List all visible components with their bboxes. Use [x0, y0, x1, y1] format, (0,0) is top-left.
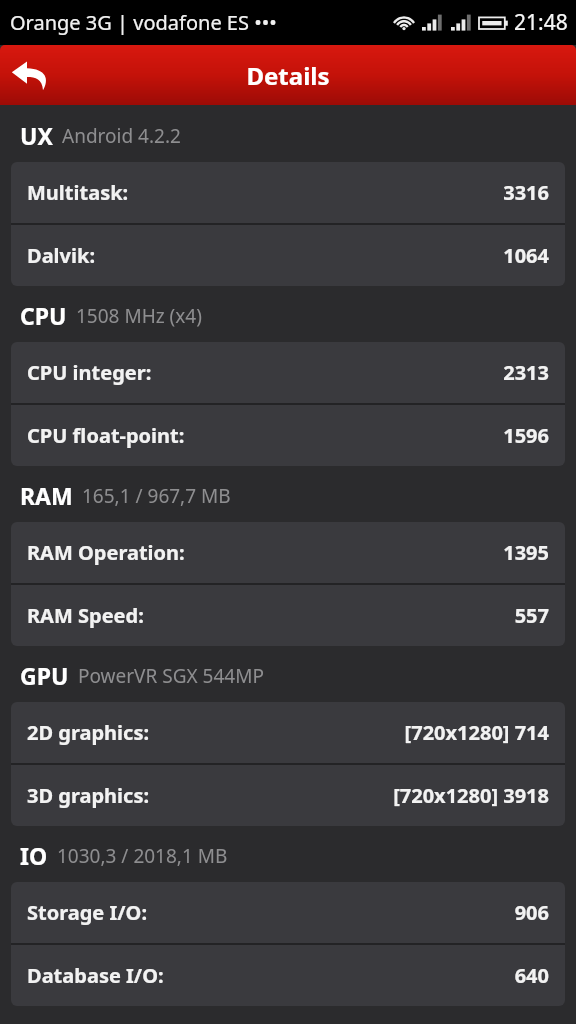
staticText: Multitask:: [27, 179, 129, 206]
staticText: Storage I/O:: [27, 899, 148, 926]
staticText: 165,1 / 967,7 MB: [82, 483, 231, 509]
staticText: 2313: [503, 359, 549, 386]
staticText: 1395: [503, 539, 549, 566]
staticText: 1064: [503, 242, 549, 269]
button[interactable]: CPU integer:: [11, 342, 565, 403]
button[interactable]: Storage I/O:: [11, 882, 565, 943]
staticText: Details: [246, 59, 330, 92]
button[interactable]: Back: [0, 45, 62, 105]
staticText: 21:48: [514, 8, 568, 37]
staticText: 1596: [503, 422, 549, 449]
button[interactable]: 3D graphics:: [11, 765, 565, 826]
staticText: 1030,3 / 2018,1 MB: [57, 843, 228, 869]
staticText: Dalvik:: [27, 242, 95, 269]
button[interactable]: RAM Operation:: [11, 522, 565, 583]
staticText: IO: [20, 840, 48, 871]
staticText: [720x1280] 3918: [393, 782, 549, 809]
button[interactable]: Dalvik:: [11, 225, 565, 286]
staticText: 2D graphics:: [27, 719, 150, 746]
button[interactable]: RAM Speed:: [11, 585, 565, 646]
staticText: [720x1280] 714: [404, 719, 549, 746]
staticText: RAM Speed:: [27, 602, 144, 629]
staticText: CPU integer:: [27, 359, 152, 386]
staticText: PowerVR SGX 544MP: [78, 663, 264, 689]
button[interactable]: CPU float-point:: [11, 405, 565, 466]
staticText: 1508 MHz (x4): [76, 303, 202, 329]
staticText: CPU: [20, 300, 67, 331]
staticText: 640: [514, 962, 549, 989]
staticText: 557: [514, 602, 549, 629]
staticText: Orange 3G | vodafone ES •••: [10, 9, 277, 36]
staticText: Android 4.2.2: [62, 123, 181, 149]
button[interactable]: 2D graphics:: [11, 702, 565, 763]
staticText: 3D graphics:: [27, 782, 150, 809]
button[interactable]: Multitask:: [11, 162, 565, 223]
button[interactable]: Database I/O:: [11, 945, 565, 1006]
staticText: GPU: [20, 660, 69, 691]
staticText: 3316: [503, 179, 549, 206]
staticText: UX: [20, 120, 53, 151]
staticText: Database I/O:: [27, 962, 164, 989]
staticText: CPU float-point:: [27, 422, 185, 449]
staticText: RAM: [20, 480, 73, 511]
staticText: RAM Operation:: [27, 539, 185, 566]
staticText: 906: [514, 899, 549, 926]
